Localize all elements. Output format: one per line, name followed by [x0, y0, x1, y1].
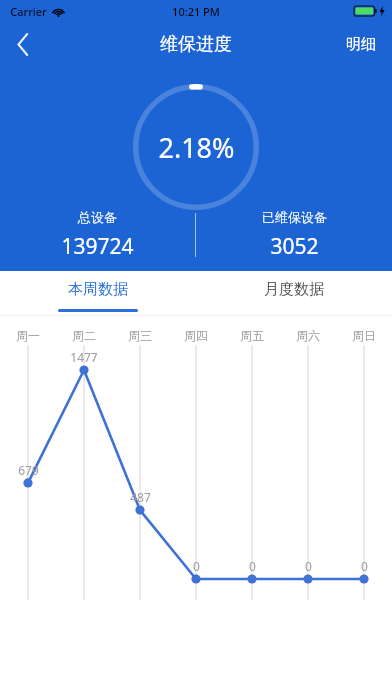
staticText: 487: [130, 489, 151, 505]
staticText: 10:21 PM: [172, 4, 220, 19]
staticText: 679: [18, 462, 39, 478]
button[interactable]: 月度数据: [196, 271, 392, 315]
staticText: 月度数据: [264, 280, 324, 299]
button[interactable]: Back: [0, 22, 46, 66]
staticText: 周四: [184, 328, 208, 343]
button[interactable]: 本周数据: [0, 271, 196, 315]
staticText: 2.18%: [158, 129, 235, 166]
staticText: 1477: [70, 349, 98, 365]
staticText: 3052: [270, 232, 319, 261]
staticText: 周日: [352, 328, 376, 343]
button[interactable]: 明细: [330, 24, 392, 65]
button[interactable]: 已维保设备: [196, 209, 392, 261]
staticText: 0: [361, 558, 368, 574]
staticText: 周六: [296, 328, 320, 343]
staticText: 周二: [72, 328, 96, 343]
staticText: 139724: [61, 232, 134, 261]
staticText: 维保进度: [160, 33, 232, 56]
button[interactable]: 总设备: [0, 209, 195, 261]
staticText: 明细: [346, 35, 376, 54]
staticText: 已维保设备: [262, 209, 327, 225]
staticText: 周三: [128, 328, 152, 343]
staticText: 周一: [16, 328, 40, 343]
staticText: 周五: [240, 328, 264, 343]
staticText: Carrier: [10, 4, 47, 19]
staticText: 本周数据: [68, 280, 128, 299]
staticText: 总设备: [78, 209, 117, 225]
staticText: 0: [193, 558, 200, 574]
staticText: 0: [249, 558, 256, 574]
staticText: 0: [305, 558, 312, 574]
